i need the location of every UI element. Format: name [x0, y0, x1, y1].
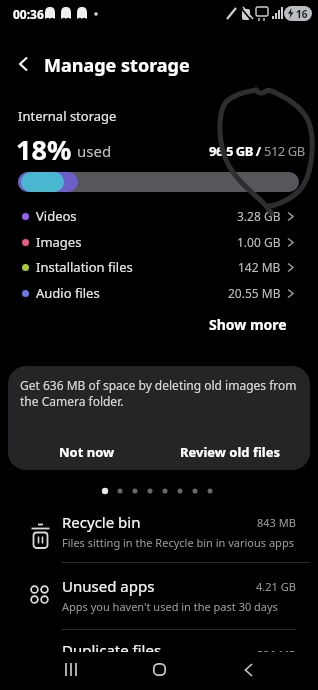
staticText: 00:36 — [13, 6, 44, 22]
staticText: Recycle bin — [62, 512, 141, 532]
staticText: 3.28 GB — [237, 208, 281, 224]
button[interactable]: Duplicate files — [0, 638, 318, 663]
button[interactable]: Show more — [0, 310, 287, 338]
staticText: 96.5 GB / — [209, 142, 264, 160]
staticText: Review old files — [180, 443, 281, 461]
staticText: 1.00 GB — [237, 234, 281, 250]
staticText: 142 MB — [238, 259, 281, 275]
staticText: 526 MB — [257, 647, 296, 662]
staticText: 20.55 MB — [228, 285, 281, 301]
button[interactable]: Recycle bin — [0, 503, 318, 561]
button[interactable] — [6, 48, 40, 80]
button[interactable]: Audio files — [0, 280, 318, 306]
staticText: 512 GB — [264, 142, 305, 160]
staticText: Images — [36, 233, 82, 251]
button[interactable] — [51, 652, 91, 687]
staticText: Get 636 MB of space by deleting old imag… — [20, 377, 297, 409]
button[interactable]: Review old files — [175, 438, 285, 466]
button[interactable]: Not now — [47, 438, 127, 466]
staticText: Show more — [209, 315, 287, 334]
staticText: Not now — [59, 443, 115, 461]
button[interactable]: Videos — [0, 203, 318, 229]
staticText: 843 MB — [257, 515, 296, 530]
button[interactable] — [139, 652, 179, 687]
staticText: Installation files — [36, 258, 133, 276]
button[interactable]: Installation files — [0, 254, 318, 280]
button[interactable]: Unused apps — [0, 568, 318, 626]
button[interactable]: Images — [0, 229, 318, 255]
staticText: Files sitting in the Recycle bin in vari… — [62, 535, 294, 550]
staticText: Manage storage — [44, 53, 190, 78]
staticText: Duplicate files — [62, 640, 162, 660]
staticText: 4.21 GB — [256, 579, 296, 594]
staticText: Videos — [36, 207, 77, 225]
staticText: 18% — [16, 131, 72, 168]
staticText: Internal storage — [18, 107, 117, 125]
staticText: Apps you haven't used in the past 30 day… — [62, 599, 278, 614]
staticText: Unused apps — [62, 576, 155, 596]
staticText: Audio files — [36, 284, 100, 302]
staticText: 16 — [296, 7, 308, 21]
button[interactable] — [228, 652, 268, 687]
staticText: used — [77, 141, 112, 161]
